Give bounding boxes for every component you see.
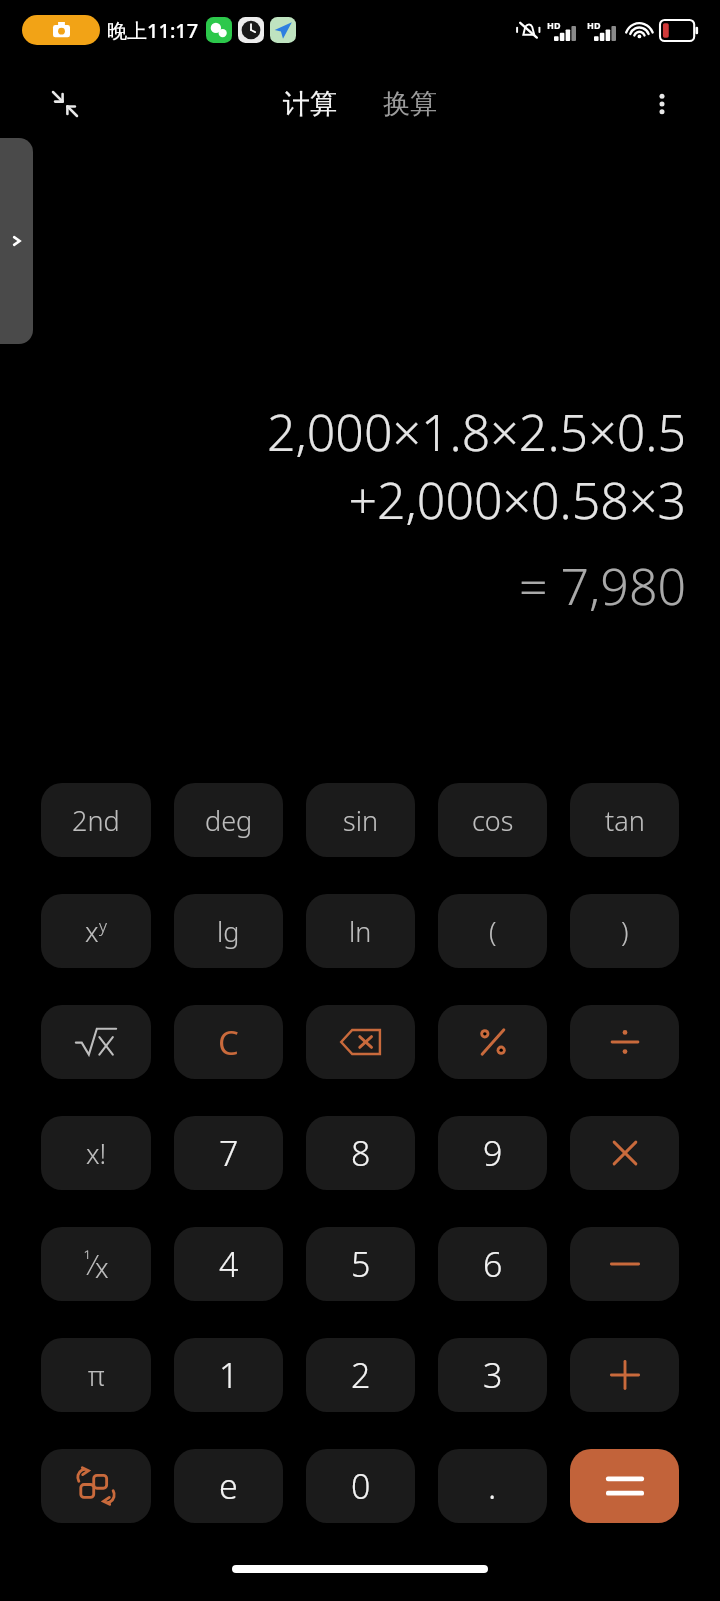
button[interactable]: Backspace (306, 1005, 415, 1079)
button[interactable]: 换算 (373, 81, 447, 127)
button[interactable]: 0 (306, 1449, 415, 1523)
staticText: 计算 (283, 87, 337, 121)
staticText: 换算 (383, 87, 437, 121)
staticText: 2nd (72, 802, 120, 839)
staticText: = 7,980 (34, 552, 686, 620)
button[interactable]: Open side panel (0, 138, 33, 344)
staticText: sin (343, 802, 378, 839)
staticText: 0 (351, 1463, 371, 1509)
button[interactable]: 9 (438, 1116, 547, 1190)
button[interactable] (570, 1005, 679, 1079)
staticText: 1 (219, 1352, 239, 1398)
button[interactable]: 8 (306, 1116, 415, 1190)
staticText: 8 (351, 1130, 371, 1176)
button[interactable]: 计算 (273, 81, 347, 127)
button[interactable]: x! (41, 1116, 151, 1190)
button[interactable]: 6 (438, 1227, 547, 1301)
staticText: 6 (483, 1241, 503, 1287)
staticText: HD (587, 19, 601, 31)
button[interactable] (438, 1005, 547, 1079)
staticText: deg (205, 802, 253, 839)
staticText: 晚上11:17 (107, 17, 199, 44)
staticText: 2 (351, 1352, 371, 1398)
button[interactable]: 1 (174, 1338, 283, 1412)
staticText: ) (621, 913, 629, 950)
button[interactable]: 2nd (41, 783, 151, 857)
button[interactable]: cos (438, 783, 547, 857)
button[interactable]: e (174, 1449, 283, 1523)
staticText: ( (489, 913, 497, 950)
button[interactable]: tan (570, 783, 679, 857)
staticText: 7 (219, 1130, 239, 1176)
staticText: . (488, 1463, 497, 1509)
button[interactable]: 3 (438, 1338, 547, 1412)
button[interactable]: x (41, 894, 151, 968)
button[interactable]: sin (306, 783, 415, 857)
button[interactable]: 5 (306, 1227, 415, 1301)
button[interactable]: C (174, 1005, 283, 1079)
staticText: π (88, 1357, 105, 1394)
button[interactable]: Unit convert (41, 1449, 151, 1523)
staticText: e (219, 1463, 238, 1509)
staticText: x (95, 1249, 109, 1286)
staticText: y (99, 914, 107, 937)
button[interactable]: Collapse (42, 81, 88, 127)
button[interactable]: lg (174, 894, 283, 968)
staticText: 9 (483, 1130, 503, 1176)
button[interactable] (570, 1227, 679, 1301)
button[interactable] (570, 1449, 679, 1523)
button[interactable]: ln (306, 894, 415, 968)
staticText: HD (547, 19, 561, 31)
button[interactable]: ) (570, 894, 679, 968)
staticText: 2,000×1.8×2.5×0.5 (34, 398, 686, 466)
staticText: ln (349, 913, 372, 950)
staticText: x! (86, 1135, 107, 1172)
button[interactable]: ( (438, 894, 547, 968)
button[interactable]: 4 (174, 1227, 283, 1301)
button[interactable] (570, 1116, 679, 1190)
staticText: 5 (351, 1241, 371, 1287)
staticText: tan (605, 802, 645, 839)
staticText: +2,000×0.58×3 (34, 466, 686, 534)
staticText: lg (217, 913, 240, 950)
button[interactable]: . (438, 1449, 547, 1523)
button[interactable]: π (41, 1338, 151, 1412)
staticText: 3 (483, 1352, 503, 1398)
staticText: ¹ (84, 1247, 91, 1273)
staticText: x (85, 913, 99, 950)
staticText: ⁄ (91, 1246, 95, 1283)
button[interactable]: 2 (306, 1338, 415, 1412)
button[interactable]: More options (640, 82, 684, 126)
staticText: 4 (219, 1241, 239, 1287)
staticText: cos (472, 802, 514, 839)
button[interactable]: ¹ (41, 1227, 151, 1301)
button[interactable] (41, 1005, 151, 1079)
button[interactable] (570, 1338, 679, 1412)
button[interactable]: 7 (174, 1116, 283, 1190)
staticText: C (218, 1020, 239, 1065)
button[interactable]: deg (174, 783, 283, 857)
